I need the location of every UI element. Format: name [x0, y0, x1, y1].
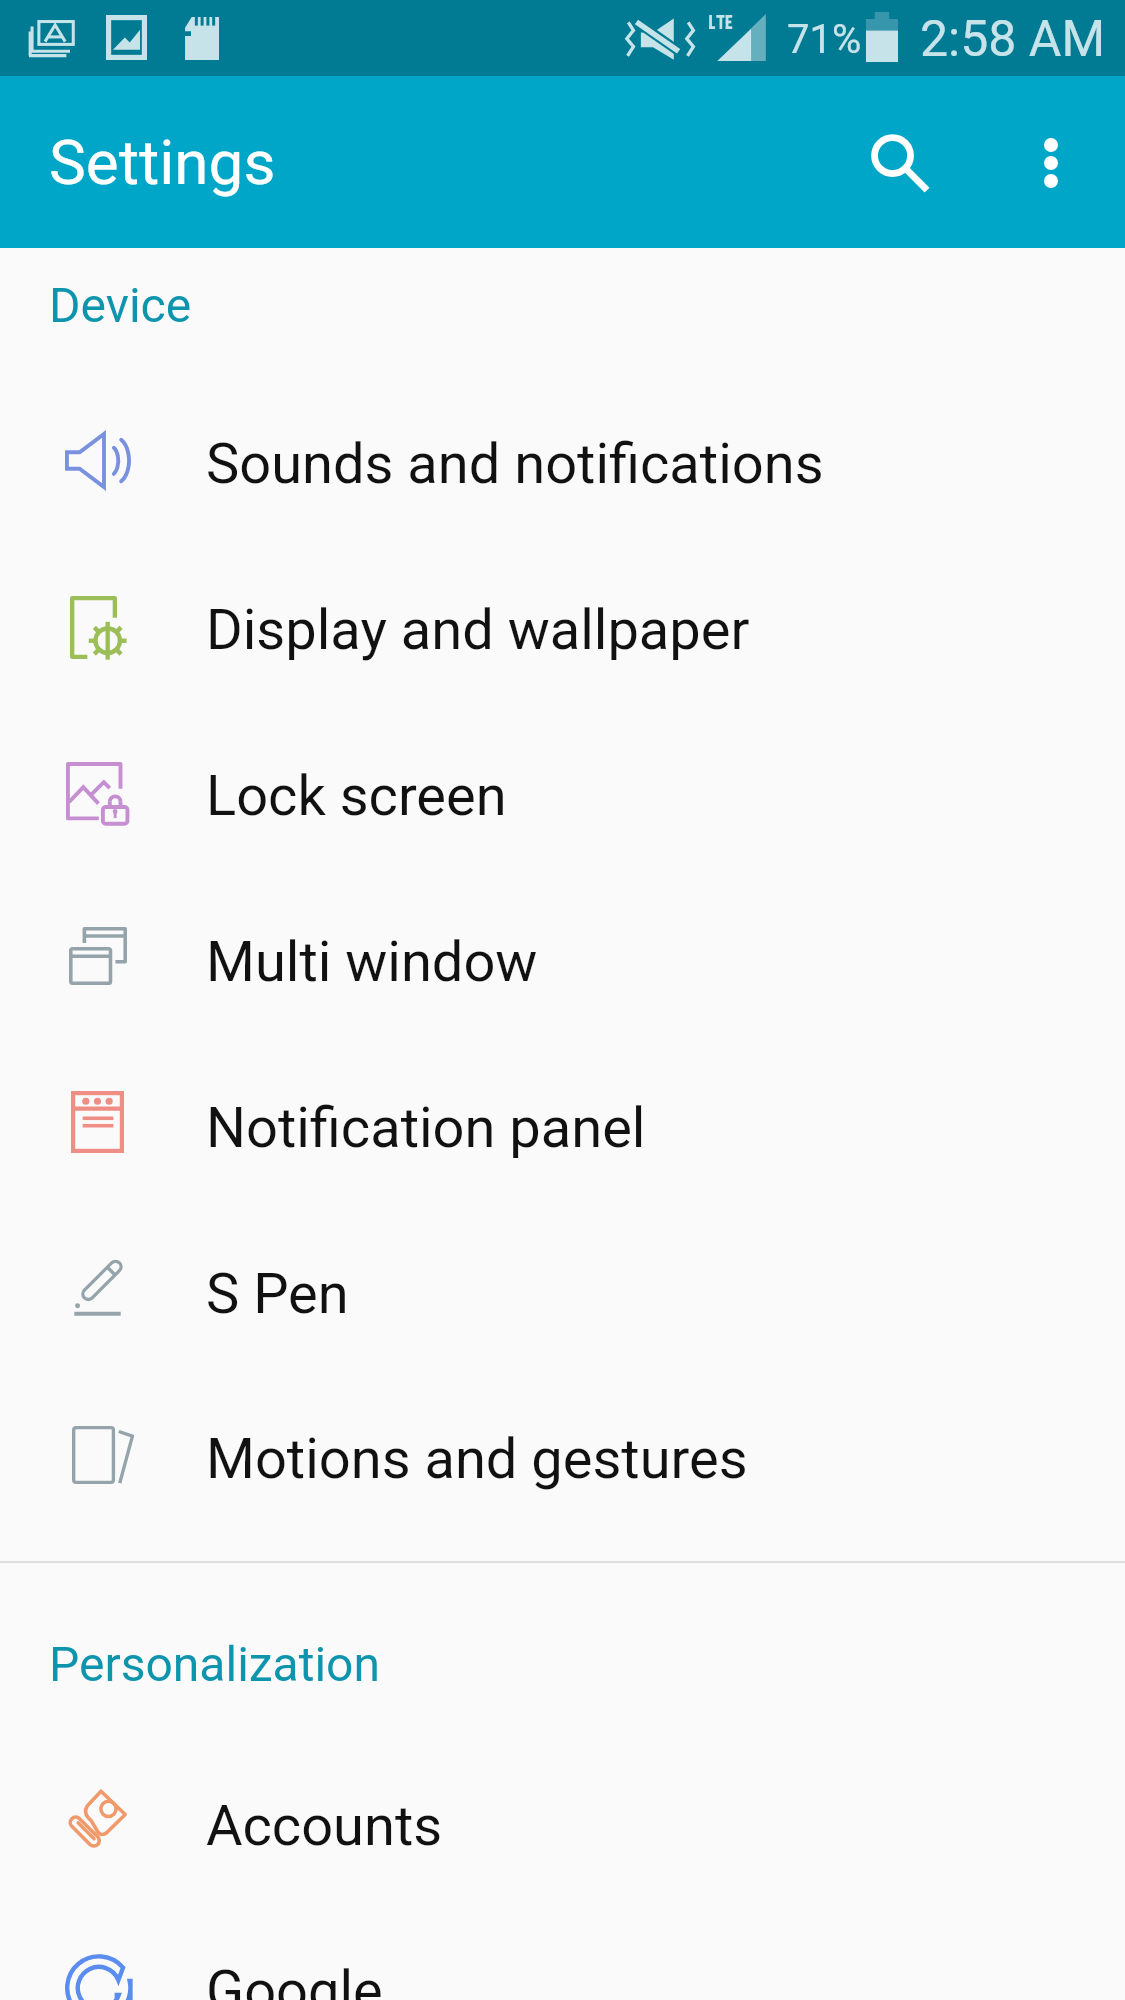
- button[interactable]: [0, 1188, 1125, 1354]
- button[interactable]: [0, 1353, 1125, 1519]
- staticText: Google: [206, 1958, 383, 2000]
- button[interactable]: [0, 358, 1125, 524]
- staticText: 71%: [787, 16, 862, 63]
- staticText: 2:58 AM: [920, 10, 1106, 69]
- button[interactable]: [0, 856, 1125, 1022]
- staticText: Notification panel: [206, 1095, 646, 1161]
- staticText: Multi window: [206, 929, 538, 995]
- button[interactable]: [0, 524, 1125, 690]
- button[interactable]: [0, 690, 1125, 856]
- staticText: Motions and gestures: [206, 1426, 748, 1492]
- staticText: S Pen: [206, 1261, 349, 1327]
- staticText: Personalization: [49, 1636, 380, 1692]
- button[interactable]: More options: [993, 105, 1109, 221]
- button[interactable]: [0, 1022, 1125, 1188]
- staticText: Display and wallpaper: [206, 597, 750, 663]
- button[interactable]: [0, 1720, 1125, 1886]
- staticText: Settings: [49, 126, 276, 199]
- staticText: Accounts: [206, 1793, 443, 1859]
- staticText: Lock screen: [206, 763, 507, 829]
- button[interactable]: [0, 1885, 1125, 2000]
- staticText: Device: [49, 277, 192, 333]
- button[interactable]: Search: [842, 105, 958, 221]
- staticText: Sounds and notifications: [206, 431, 824, 497]
